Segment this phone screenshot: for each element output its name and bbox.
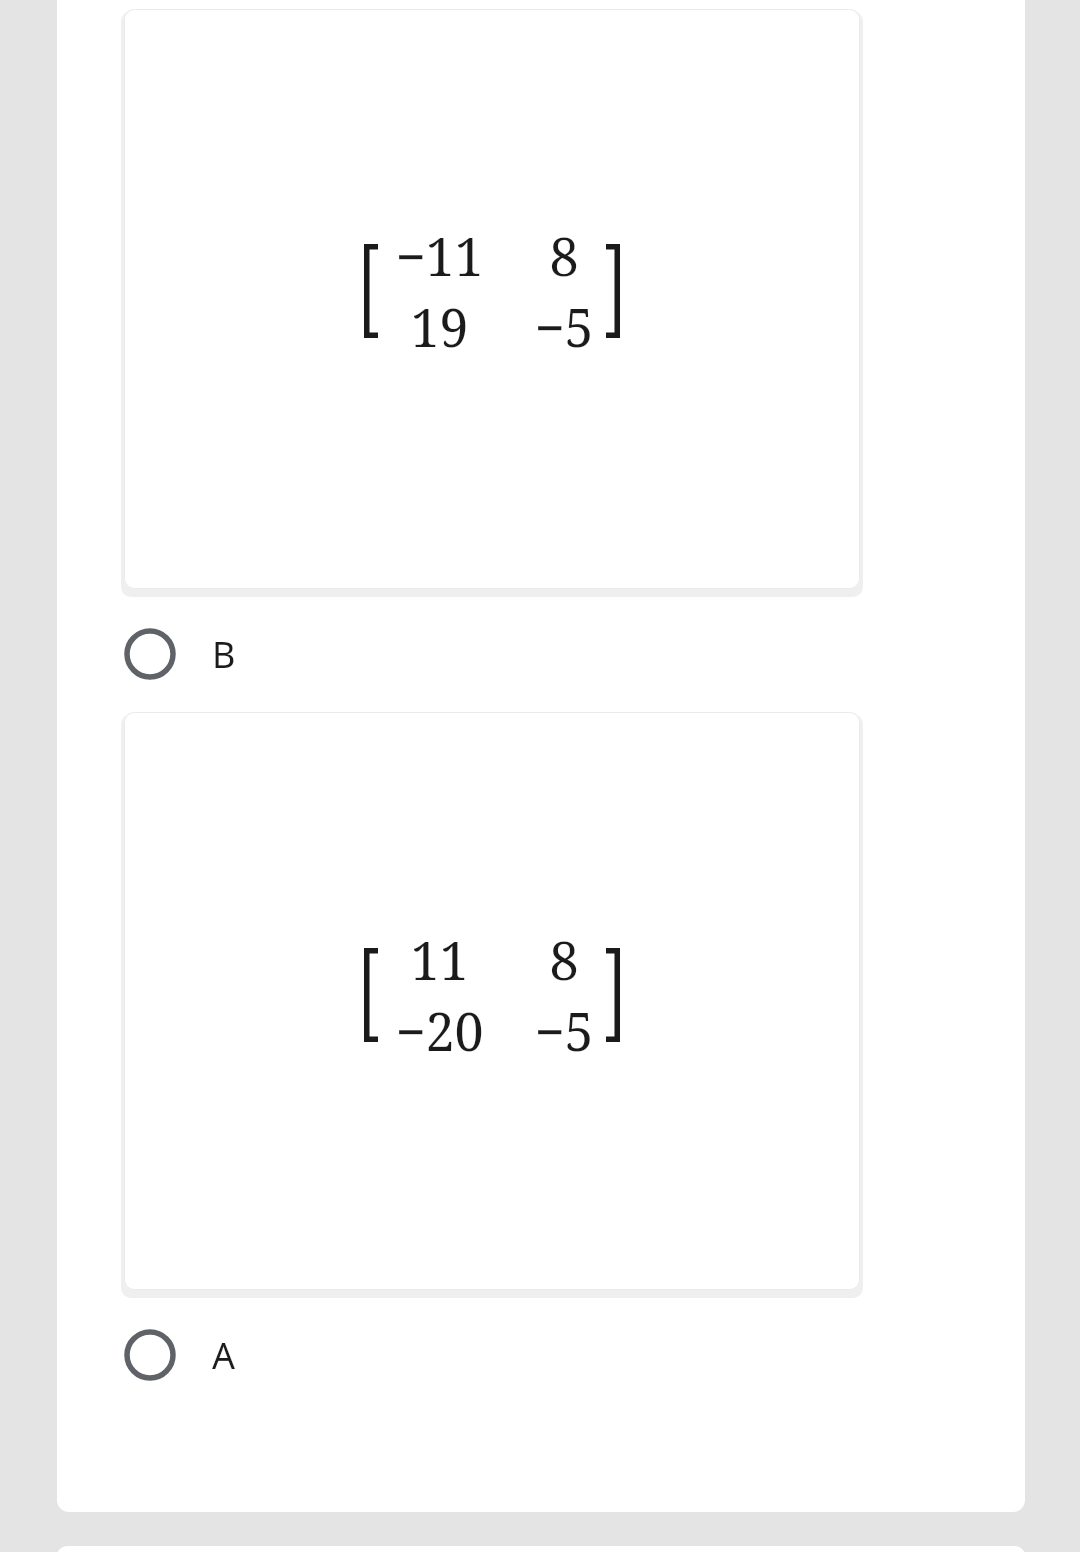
- button[interactable]: −11: [124, 9, 860, 589]
- staticText: 8: [549, 220, 579, 291]
- staticText: 19: [410, 291, 469, 362]
- other: Select option A: [122, 1327, 178, 1383]
- button[interactable]: Select option A: [0, 1309, 1080, 1401]
- staticText: −11: [395, 220, 484, 291]
- staticText: A: [212, 1331, 236, 1380]
- staticText: 8: [549, 924, 579, 995]
- button[interactable]: 11: [124, 712, 860, 1290]
- staticText: −5: [534, 995, 594, 1066]
- staticText: B: [212, 630, 236, 679]
- staticText: −5: [534, 291, 594, 362]
- button[interactable]: Select option B: [0, 608, 1080, 700]
- staticText: 11: [410, 924, 469, 995]
- staticText: −20: [395, 995, 484, 1066]
- other: Select option B: [122, 626, 178, 682]
